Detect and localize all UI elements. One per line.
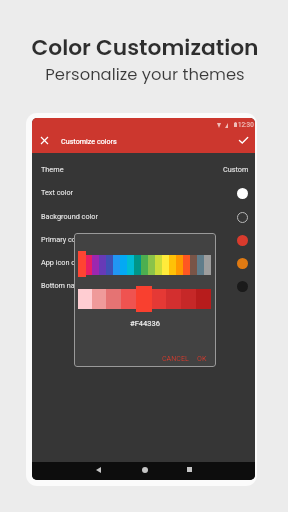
staticText: Custom [223, 165, 249, 174]
staticText: 12:30 [238, 121, 254, 128]
button[interactable]: OK [193, 350, 211, 366]
staticText: Bottom navigation color [41, 281, 119, 290]
staticText: Color Customization [1, 32, 288, 63]
staticText: Background color [41, 212, 98, 221]
staticText: #F44336 [74, 319, 216, 328]
staticText: Customize colors [61, 137, 117, 145]
staticText: Primary color [41, 235, 85, 244]
button[interactable]: Close [36, 132, 53, 149]
button[interactable]: CANCEL [158, 350, 192, 366]
staticText: Text color [41, 188, 74, 197]
staticText: Theme [41, 165, 64, 174]
button[interactable]: Primary color [32, 228, 255, 252]
button[interactable]: Text color [32, 181, 255, 205]
staticText: App icon color [41, 258, 88, 267]
button[interactable]: Apply [235, 132, 252, 149]
staticText: OK [197, 354, 207, 362]
staticText: CANCEL [162, 354, 189, 362]
staticText: Personalize your themes [1, 63, 288, 86]
button[interactable]: Theme [32, 158, 255, 182]
button[interactable]: Back [90, 461, 107, 478]
button[interactable]: App icon color [32, 251, 255, 275]
button[interactable]: Bottom navigation color [32, 274, 255, 298]
button[interactable]: Recent apps [181, 461, 198, 478]
button[interactable]: Background color [32, 205, 255, 229]
button[interactable]: Home [136, 461, 153, 478]
